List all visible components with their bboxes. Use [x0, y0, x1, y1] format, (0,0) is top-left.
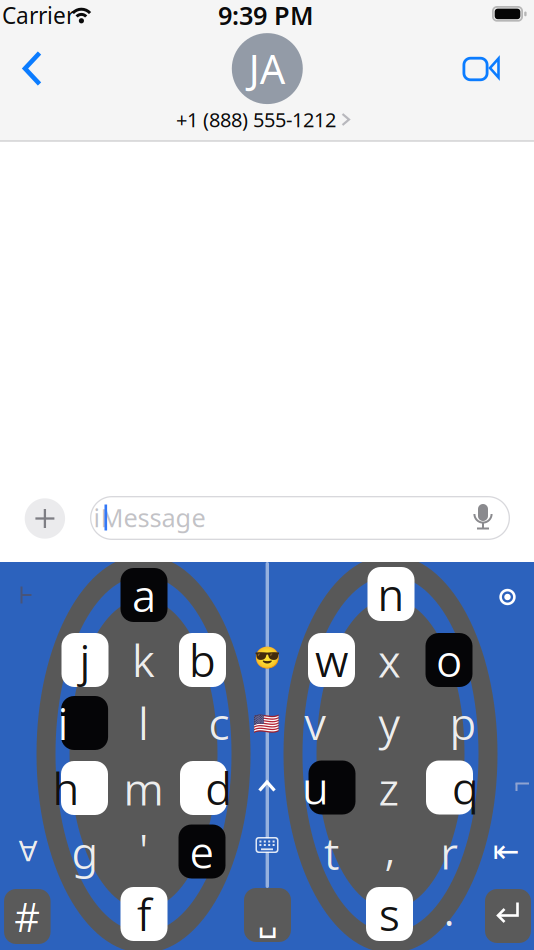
button[interactable]: g [61, 825, 109, 879]
staticText: s [379, 884, 400, 944]
staticText: JA [249, 42, 286, 95]
staticText: 😎 [253, 646, 280, 670]
staticText: p [449, 693, 476, 753]
staticText: 9:39 PM [218, 0, 314, 32]
staticText: . [443, 879, 454, 939]
button[interactable]: u [308, 760, 356, 814]
staticText: u [302, 757, 329, 817]
button[interactable]: i [61, 696, 109, 750]
button[interactable]: l [119, 696, 167, 750]
button[interactable]: Numbers [4, 889, 51, 944]
button[interactable]: v [291, 696, 339, 750]
button[interactable]: , [366, 823, 414, 877]
staticText: z [378, 758, 399, 818]
button[interactable]: s [365, 887, 413, 941]
button[interactable]: iMessage text field [90, 496, 510, 540]
button[interactable]: a [120, 568, 168, 622]
button[interactable]: q [425, 760, 473, 814]
button[interactable]: Keyboard [252, 833, 282, 857]
button[interactable]: m [119, 761, 167, 815]
button[interactable]: All [10, 831, 46, 871]
staticText: t [324, 823, 339, 883]
button[interactable]: r [425, 825, 473, 879]
button[interactable]: b [178, 633, 226, 687]
button[interactable]: p [439, 696, 487, 750]
staticText: m [123, 758, 163, 818]
staticText: ' [139, 820, 148, 880]
staticText: ∀ [18, 836, 37, 867]
staticText: q [452, 757, 479, 817]
staticText: ␣ [257, 902, 277, 938]
staticText: i [57, 693, 68, 753]
button[interactable]: Delete [488, 831, 524, 871]
staticText: j [79, 630, 90, 690]
button[interactable]: t [307, 826, 355, 880]
staticText: h [52, 758, 79, 818]
staticText: o [436, 630, 462, 690]
staticText: b [189, 630, 216, 690]
button[interactable]: f [120, 887, 168, 941]
button[interactable]: n [367, 567, 415, 621]
staticText: f [137, 884, 151, 944]
button[interactable]: j [61, 633, 109, 687]
button[interactable]: 🇺🇸 [246, 702, 286, 746]
button[interactable]: Dictate [468, 500, 498, 534]
button[interactable]: Shift [253, 776, 281, 796]
button[interactable]: z [365, 761, 413, 815]
staticText: iMessage [93, 501, 205, 534]
staticText: # [14, 889, 40, 944]
button[interactable]: y [365, 696, 413, 750]
button[interactable]: 😎 [247, 636, 287, 680]
button[interactable]: Pointer [496, 586, 518, 608]
button[interactable]: e [178, 824, 226, 878]
button[interactable]: x [365, 633, 413, 687]
staticText: 🇺🇸 [253, 712, 280, 736]
button[interactable]: FaceTime [460, 55, 502, 83]
button[interactable]: o [425, 633, 473, 687]
button[interactable]: Return [485, 889, 531, 943]
staticText: k [132, 630, 155, 690]
staticText: Carrier [2, 0, 75, 30]
staticText: a [132, 565, 156, 625]
button[interactable]: . [425, 888, 473, 942]
staticText: g [71, 822, 98, 882]
staticText: v [304, 693, 325, 753]
staticText: ⇤ [492, 833, 519, 870]
staticText: y [378, 693, 400, 753]
staticText: d [205, 758, 232, 818]
button[interactable]: Attach [25, 498, 65, 539]
staticText: , [384, 818, 395, 878]
button[interactable]: h [60, 761, 108, 815]
button[interactable]: d [179, 761, 227, 815]
button[interactable]: w [307, 633, 355, 687]
button[interactable]: ' [119, 825, 167, 879]
button[interactable]: k [119, 633, 167, 687]
button[interactable]: Contact JA [232, 33, 303, 104]
staticText: l [138, 693, 149, 753]
staticText: n [377, 564, 404, 624]
button[interactable]: Contact details [158, 107, 368, 131]
staticText: x [378, 630, 401, 690]
button[interactable]: Back [17, 48, 47, 88]
staticText: c [208, 693, 229, 753]
staticText: r [440, 822, 458, 882]
staticText: w [315, 630, 348, 690]
button[interactable]: c [195, 696, 243, 750]
staticText: e [189, 821, 214, 881]
staticText: +1 (888) 555-1212 [176, 106, 336, 133]
button[interactable]: Space [244, 888, 291, 942]
